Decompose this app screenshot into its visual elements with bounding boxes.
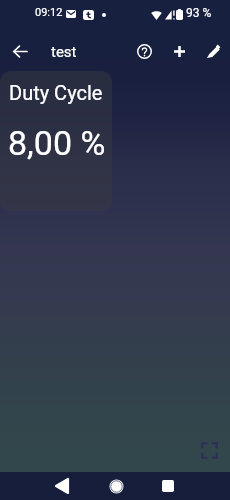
staticText: test [51, 43, 77, 61]
staticText: 93 % [186, 6, 212, 20]
button[interactable]: Fullscreen [197, 438, 221, 462]
button[interactable]: Help [124, 31, 164, 71]
button[interactable]: Back [0, 31, 40, 71]
button[interactable]: Back [38, 472, 86, 500]
button[interactable]: Duty Cycle [0, 71, 112, 211]
button[interactable]: Home [92, 472, 140, 500]
button[interactable]: Recents [144, 472, 192, 500]
staticText: 09:12 [35, 6, 63, 19]
staticText: Duty Cycle [9, 81, 103, 104]
staticText: 8,00 % [8, 123, 106, 163]
button[interactable]: Add [159, 31, 199, 71]
button[interactable]: Edit [193, 31, 230, 71]
